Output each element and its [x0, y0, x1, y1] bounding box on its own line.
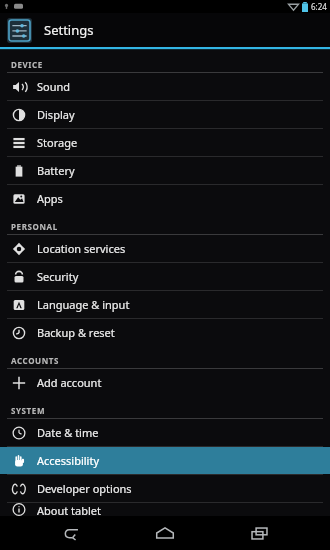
staticText: Language & input	[37, 297, 130, 312]
button[interactable]: About tablet	[0, 503, 330, 516]
button[interactable]: Home	[142, 518, 188, 548]
staticText: Battery	[37, 163, 75, 178]
button[interactable]: Battery	[0, 157, 330, 184]
button[interactable]: Display	[0, 101, 330, 128]
staticText: SYSTEM	[11, 405, 46, 416]
staticText: Developer options	[37, 481, 132, 496]
button[interactable]: Location services	[0, 235, 330, 262]
staticText: Settings	[44, 21, 94, 39]
button[interactable]: Back	[48, 518, 94, 548]
button[interactable]: Recent apps	[236, 518, 282, 548]
staticText: PERSONAL	[11, 221, 58, 232]
staticText: Display	[37, 107, 75, 122]
button[interactable]: Accessibility	[0, 447, 330, 474]
button[interactable]: Developer options	[0, 475, 330, 502]
button[interactable]: Sound	[0, 73, 330, 100]
staticText: Date & time	[37, 425, 99, 440]
button[interactable]: Add account	[0, 369, 330, 396]
staticText: Apps	[37, 191, 63, 206]
staticText: DEVICE	[11, 59, 43, 70]
button[interactable]: Security	[0, 263, 330, 290]
button[interactable]: Date & time	[0, 419, 330, 446]
staticText: ACCOUNTS	[11, 355, 60, 366]
staticText: About tablet	[37, 503, 101, 516]
staticText: Add account	[37, 375, 102, 390]
button[interactable]: Backup & reset	[0, 319, 330, 346]
button[interactable]: Apps	[0, 185, 330, 212]
staticText: 6:24	[311, 1, 327, 12]
staticText: Sound	[37, 79, 71, 94]
staticText: Accessibility	[37, 453, 100, 468]
staticText: Location services	[37, 241, 126, 256]
staticText: Backup & reset	[37, 325, 115, 340]
button[interactable]: Language & input	[0, 291, 330, 318]
staticText: Storage	[37, 135, 78, 150]
button[interactable]: Storage	[0, 129, 330, 156]
staticText: Security	[37, 269, 79, 284]
